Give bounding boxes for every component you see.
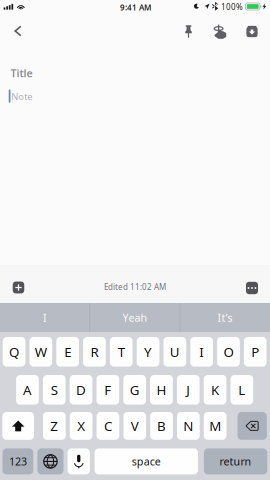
button[interactable]: I	[0, 303, 90, 332]
staticText: Edited 11:02 AM	[104, 282, 166, 292]
staticText: 9:41 AM	[120, 2, 151, 13]
staticText: Z	[50, 417, 58, 435]
staticText: F	[104, 381, 111, 399]
button[interactable]: T	[110, 337, 133, 367]
button[interactable]: H	[150, 375, 173, 405]
button[interactable]: Add attachment	[6, 278, 31, 297]
button[interactable]: Z	[43, 412, 66, 440]
button[interactable]: space	[95, 448, 198, 474]
button[interactable]: E	[56, 337, 79, 367]
button[interactable]: More options	[240, 278, 264, 297]
button[interactable]: F	[96, 375, 119, 405]
button[interactable]: Yeah	[90, 303, 180, 332]
button[interactable]: I	[190, 337, 213, 367]
button[interactable]: X	[70, 412, 92, 440]
button[interactable]: W	[29, 337, 52, 367]
staticText: Q	[9, 343, 19, 361]
staticText: G	[130, 381, 140, 399]
button[interactable]: Pin note	[176, 19, 200, 43]
button[interactable]: Q	[3, 337, 25, 367]
button[interactable]: Dictate	[68, 448, 90, 474]
staticText: 100%	[221, 2, 243, 12]
staticText: C	[104, 417, 112, 435]
staticText: J	[186, 381, 190, 399]
button[interactable]: B	[150, 412, 173, 440]
button[interactable]: R	[83, 337, 106, 367]
staticText: L	[238, 381, 245, 399]
button[interactable]: Back	[6, 19, 29, 43]
button[interactable]: J	[177, 375, 200, 405]
staticText: Title	[11, 66, 33, 80]
staticText: U	[170, 343, 180, 361]
button[interactable]: P	[244, 337, 267, 367]
staticText: M	[209, 417, 221, 435]
staticText: I	[199, 343, 204, 361]
button[interactable]: A	[16, 375, 39, 405]
button[interactable]: V	[123, 412, 146, 440]
staticText: H	[156, 381, 166, 399]
button[interactable]: N	[177, 412, 200, 440]
staticText: It's	[217, 310, 232, 325]
button[interactable]: K	[204, 375, 226, 405]
button[interactable]: 123	[2, 448, 33, 474]
button[interactable]: Next keyboard	[37, 448, 63, 474]
staticText: O	[223, 343, 233, 361]
staticText: return	[220, 454, 252, 468]
button[interactable]: Shift	[2, 412, 34, 440]
staticText: I	[43, 310, 47, 325]
staticText: D	[76, 381, 86, 399]
button[interactable]: U	[163, 337, 186, 367]
staticText: R	[90, 343, 98, 361]
staticText: P	[251, 343, 259, 361]
staticText: S	[51, 381, 58, 399]
staticText: E	[64, 343, 71, 361]
staticText: space	[132, 454, 161, 468]
button[interactable]: Move note	[240, 19, 264, 43]
staticText: Y	[144, 343, 152, 361]
staticText: K	[211, 381, 219, 399]
staticText: 123	[9, 454, 27, 468]
button[interactable]: Y	[137, 337, 159, 367]
staticText: Yeah	[122, 310, 147, 325]
button[interactable]: Delete	[237, 412, 267, 440]
staticText: V	[131, 417, 139, 435]
staticText: T	[118, 343, 125, 361]
staticText: W	[35, 343, 47, 361]
staticText: A	[23, 381, 32, 399]
staticText: X	[77, 417, 85, 435]
button[interactable]: It's	[180, 303, 270, 332]
button[interactable]: O	[217, 337, 240, 367]
button[interactable]: L	[230, 375, 253, 405]
button[interactable]: C	[97, 412, 119, 440]
button[interactable]: Markup	[207, 19, 231, 43]
staticText: B	[157, 417, 166, 435]
button[interactable]: G	[123, 375, 146, 405]
staticText: N	[183, 417, 193, 435]
button[interactable]: M	[204, 412, 226, 440]
staticText: Note	[11, 90, 32, 103]
button[interactable]: D	[70, 375, 92, 405]
button[interactable]: S	[43, 375, 66, 405]
button[interactable]: return	[204, 448, 267, 474]
